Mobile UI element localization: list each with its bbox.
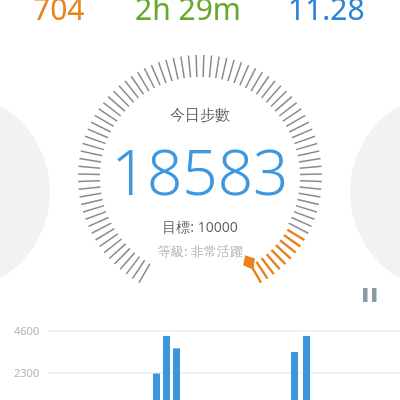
staticText: 11.28 [288, 0, 365, 29]
staticText: 目標: 10000 [162, 217, 238, 236]
staticText: 今日步數 [170, 106, 230, 125]
button[interactable]: Previous page [0, 92, 50, 292]
button[interactable]: Pause [356, 282, 386, 312]
staticText: 等級: 非常活躍 [158, 242, 243, 260]
staticText: 18583 [111, 129, 289, 213]
staticText: 2h 29m [135, 0, 241, 29]
staticText: 704 [33, 0, 85, 29]
staticText: 4600 [14, 323, 40, 338]
staticText: 2300 [14, 365, 40, 380]
button[interactable]: Next page [350, 92, 400, 292]
